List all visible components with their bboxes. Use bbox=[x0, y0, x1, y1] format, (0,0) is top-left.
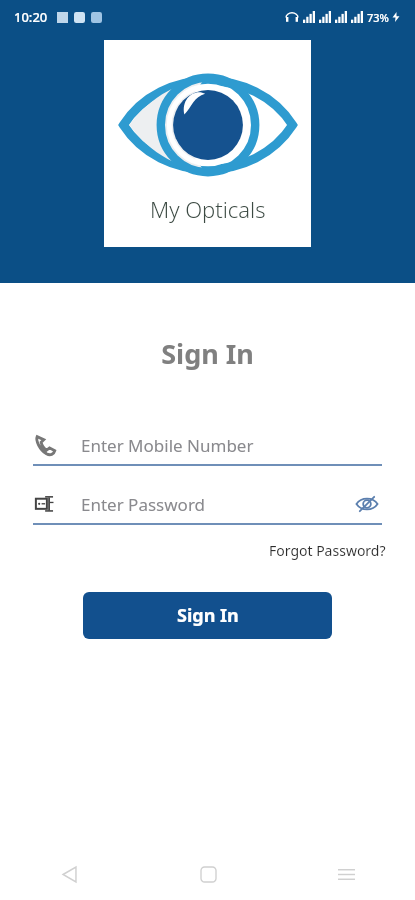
staticText: Enter Mobile Number bbox=[81, 434, 382, 457]
staticText: 10:20 bbox=[14, 8, 48, 26]
staticText: Sign In bbox=[0, 335, 415, 372]
button[interactable]: Show password bbox=[352, 489, 382, 519]
button[interactable]: Back bbox=[0, 848, 139, 900]
staticText: 73% bbox=[367, 10, 389, 25]
button[interactable]: Phone bbox=[33, 426, 382, 466]
button[interactable]: Home bbox=[139, 848, 277, 900]
button[interactable]: Forgot Password? bbox=[265, 537, 390, 564]
other: Password bbox=[33, 493, 59, 515]
staticText: Enter Password bbox=[81, 493, 352, 516]
button[interactable]: Password bbox=[33, 485, 382, 525]
staticText: Forgot Password? bbox=[269, 541, 386, 560]
button[interactable]: Recent apps bbox=[277, 848, 415, 900]
button[interactable]: Sign In bbox=[83, 592, 332, 639]
staticText: My Opticals bbox=[150, 194, 266, 224]
staticText: Sign In bbox=[177, 603, 239, 628]
other: Phone bbox=[33, 434, 59, 456]
